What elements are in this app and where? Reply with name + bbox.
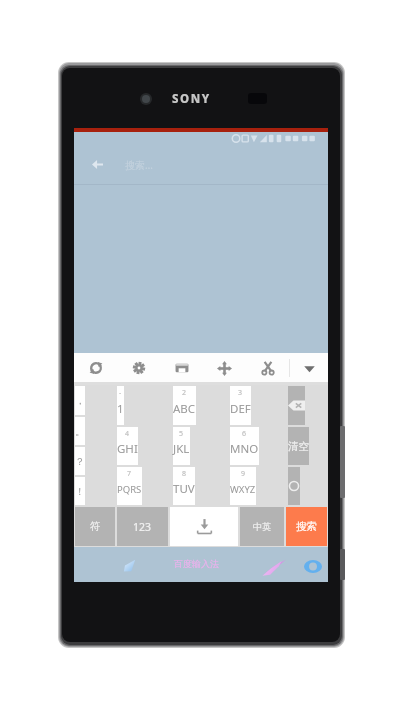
staticText: - — [119, 388, 122, 398]
staticText: 中英 — [253, 521, 271, 532]
button[interactable]: Voice input — [74, 353, 117, 383]
staticText: ， — [75, 394, 85, 407]
button[interactable]: 7 — [117, 467, 142, 505]
button[interactable]: Settings — [117, 353, 160, 383]
staticText: 符 — [90, 520, 101, 533]
staticText: ？ — [75, 455, 85, 468]
button[interactable]: Space — [170, 507, 238, 546]
button[interactable]: 清空 — [288, 427, 309, 465]
staticText: DEF — [230, 401, 251, 417]
button[interactable]: 中英 — [240, 507, 284, 546]
button[interactable]: Enter — [288, 467, 300, 505]
button[interactable]: Brush — [261, 554, 287, 580]
staticText: 3 — [238, 388, 243, 398]
button[interactable]: 。 — [75, 417, 85, 445]
button[interactable]: Backspace — [288, 386, 305, 425]
button[interactable]: Keyboard layout — [160, 353, 203, 383]
button[interactable]: - — [117, 386, 124, 425]
staticText: 5 — [179, 429, 184, 439]
button[interactable]: Move cursor — [203, 353, 246, 383]
staticText: 123 — [133, 520, 152, 534]
button[interactable]: 3 — [230, 386, 251, 425]
button[interactable]: ！ — [75, 477, 85, 505]
staticText: ABC — [173, 401, 196, 417]
button[interactable]: 9 — [230, 467, 256, 505]
button[interactable]: 5 — [173, 427, 190, 465]
staticText: SONY — [172, 91, 211, 107]
button[interactable]: Back — [82, 145, 112, 184]
button[interactable]: 符 — [75, 507, 115, 546]
button[interactable]: Theme — [246, 353, 289, 383]
staticText: 4 — [125, 429, 130, 439]
button[interactable]: ？ — [75, 447, 85, 475]
staticText: MNO — [230, 441, 259, 457]
staticText: 。 — [75, 425, 85, 438]
staticText: 1 — [117, 401, 124, 417]
staticText: 百度输入法 — [174, 558, 219, 569]
button[interactable]: 8 — [173, 467, 195, 505]
staticText: 6 — [242, 429, 247, 439]
button[interactable]: 搜索 — [286, 507, 327, 546]
button[interactable]: 4 — [117, 427, 138, 465]
button[interactable]: ， — [75, 386, 85, 415]
staticText: 搜索 — [296, 520, 317, 533]
staticText: JKL — [173, 441, 190, 457]
staticText: WXYZ — [230, 483, 256, 496]
button[interactable]: Handwriting — [118, 554, 141, 577]
button[interactable]: Hide keyboard — [290, 353, 328, 383]
staticText: 搜索… — [125, 158, 153, 172]
staticText: 2 — [182, 388, 187, 398]
button[interactable]: 2 — [173, 386, 196, 425]
staticText: TUV — [173, 481, 195, 497]
staticText: 8 — [182, 469, 187, 479]
staticText: ！ — [75, 485, 85, 498]
button[interactable]: More — [301, 554, 325, 578]
staticText: 清空 — [288, 440, 309, 453]
staticText: 7 — [127, 469, 132, 479]
button[interactable]: 123 — [117, 507, 168, 546]
button[interactable]: 6 — [230, 427, 259, 465]
staticText: PQRS — [117, 483, 142, 496]
staticText: 9 — [241, 469, 246, 479]
staticText: GHI — [117, 441, 138, 457]
